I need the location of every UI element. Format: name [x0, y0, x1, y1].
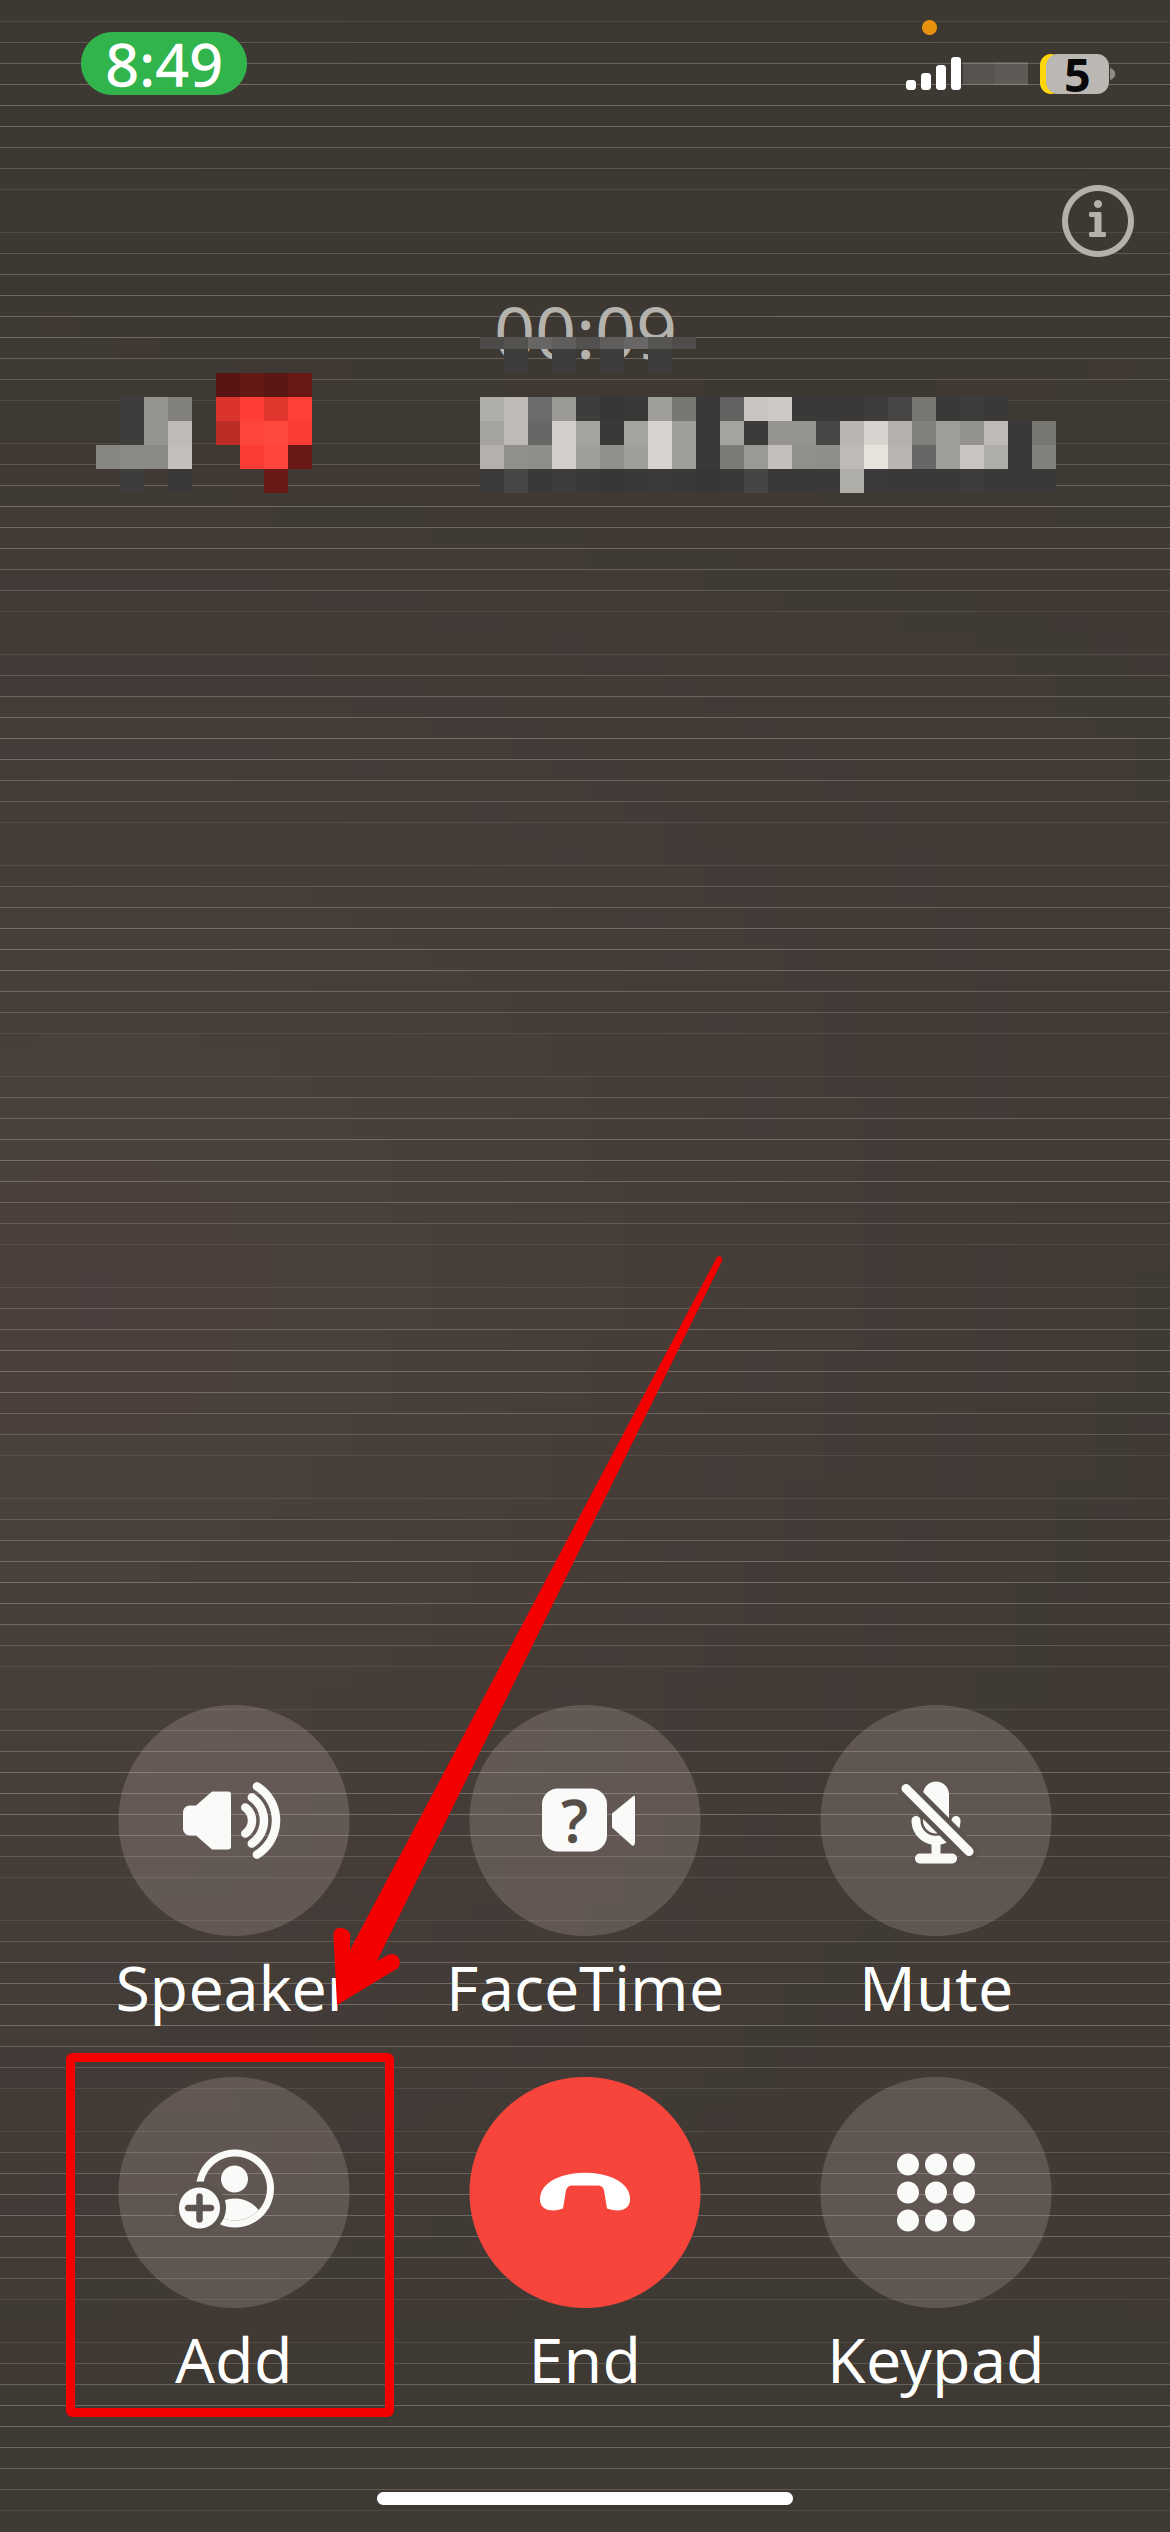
button[interactable]: Mute	[771, 1705, 1101, 2000]
staticText: Speaker	[115, 1945, 352, 2028]
button[interactable]: Keypad	[771, 2077, 1101, 2372]
staticText: ?	[561, 1781, 588, 1859]
staticText: FaceTime	[446, 1945, 724, 2028]
staticText: Keypad	[827, 2317, 1045, 2400]
button[interactable]: ?	[420, 1705, 750, 2000]
staticText: 00:09	[494, 283, 677, 379]
button[interactable]: End	[420, 2077, 750, 2372]
staticText: Add	[175, 2317, 293, 2400]
button[interactable]: Call details	[1035, 158, 1131, 254]
staticText: End	[528, 2317, 641, 2400]
staticText: 8:49	[105, 24, 223, 103]
button[interactable]: Add	[69, 2077, 399, 2372]
staticText: Mute	[859, 1945, 1013, 2028]
staticText: 5	[1064, 43, 1091, 105]
button[interactable]: Speaker	[69, 1705, 399, 2000]
